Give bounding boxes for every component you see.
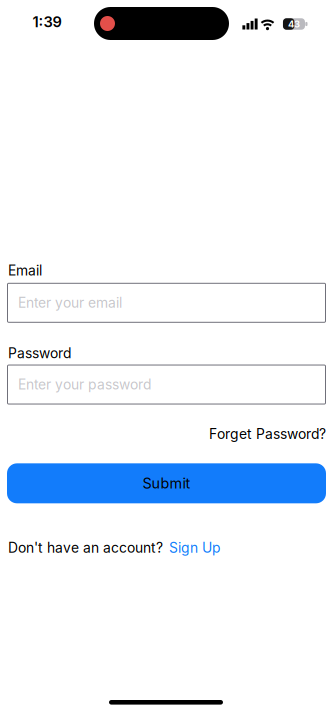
staticText: Enter your password bbox=[18, 376, 151, 393]
staticText: 43 bbox=[288, 18, 300, 30]
staticText: Don't have an account? bbox=[8, 539, 163, 556]
staticText: Submit bbox=[142, 475, 190, 492]
staticText: Email bbox=[8, 262, 42, 279]
staticText: Enter your email bbox=[18, 294, 122, 311]
button[interactable]: Enter your email bbox=[7, 283, 326, 323]
staticText: Sign Up bbox=[169, 539, 220, 556]
button[interactable]: Enter your password bbox=[7, 365, 326, 405]
button[interactable]: Submit bbox=[7, 463, 326, 503]
staticText: Forget Password? bbox=[209, 426, 326, 442]
staticText: Password bbox=[8, 345, 71, 362]
button[interactable]: Sign Up bbox=[169, 539, 220, 556]
button[interactable]: Forget Password? bbox=[209, 426, 326, 442]
staticText: 1:39 bbox=[32, 13, 61, 31]
